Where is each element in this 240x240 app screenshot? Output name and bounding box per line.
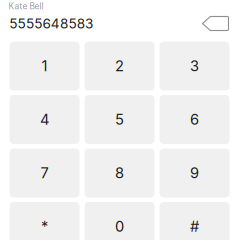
staticText: 8 bbox=[115, 164, 124, 182]
button[interactable]: 5 bbox=[85, 95, 154, 144]
button[interactable]: 3 bbox=[160, 41, 229, 90]
button[interactable]: 7 bbox=[10, 148, 79, 197]
staticText: 1 bbox=[42, 57, 48, 75]
button[interactable]: 1 bbox=[10, 41, 79, 90]
staticText: 4 bbox=[40, 111, 49, 128]
staticText: 0 bbox=[115, 218, 124, 235]
button[interactable]: 9 bbox=[160, 148, 229, 197]
staticText: Kate Bell bbox=[8, 1, 43, 11]
button[interactable]: # bbox=[160, 202, 229, 240]
staticText: 5555648583 bbox=[9, 15, 93, 32]
staticText: 7 bbox=[41, 164, 49, 182]
button[interactable]: 0 bbox=[85, 202, 154, 240]
button[interactable]: Delete bbox=[198, 12, 232, 34]
staticText: 5 bbox=[115, 111, 124, 128]
staticText: * bbox=[41, 218, 48, 235]
staticText: 2 bbox=[115, 57, 124, 75]
button[interactable]: 8 bbox=[85, 148, 154, 197]
button[interactable]: 6 bbox=[160, 95, 229, 144]
button[interactable]: 2 bbox=[85, 41, 154, 90]
staticText: 9 bbox=[190, 164, 199, 182]
staticText: # bbox=[190, 218, 199, 235]
staticText: 6 bbox=[190, 111, 199, 128]
button[interactable]: 4 bbox=[10, 95, 79, 144]
staticText: 3 bbox=[190, 57, 199, 75]
button[interactable]: * bbox=[10, 202, 79, 240]
